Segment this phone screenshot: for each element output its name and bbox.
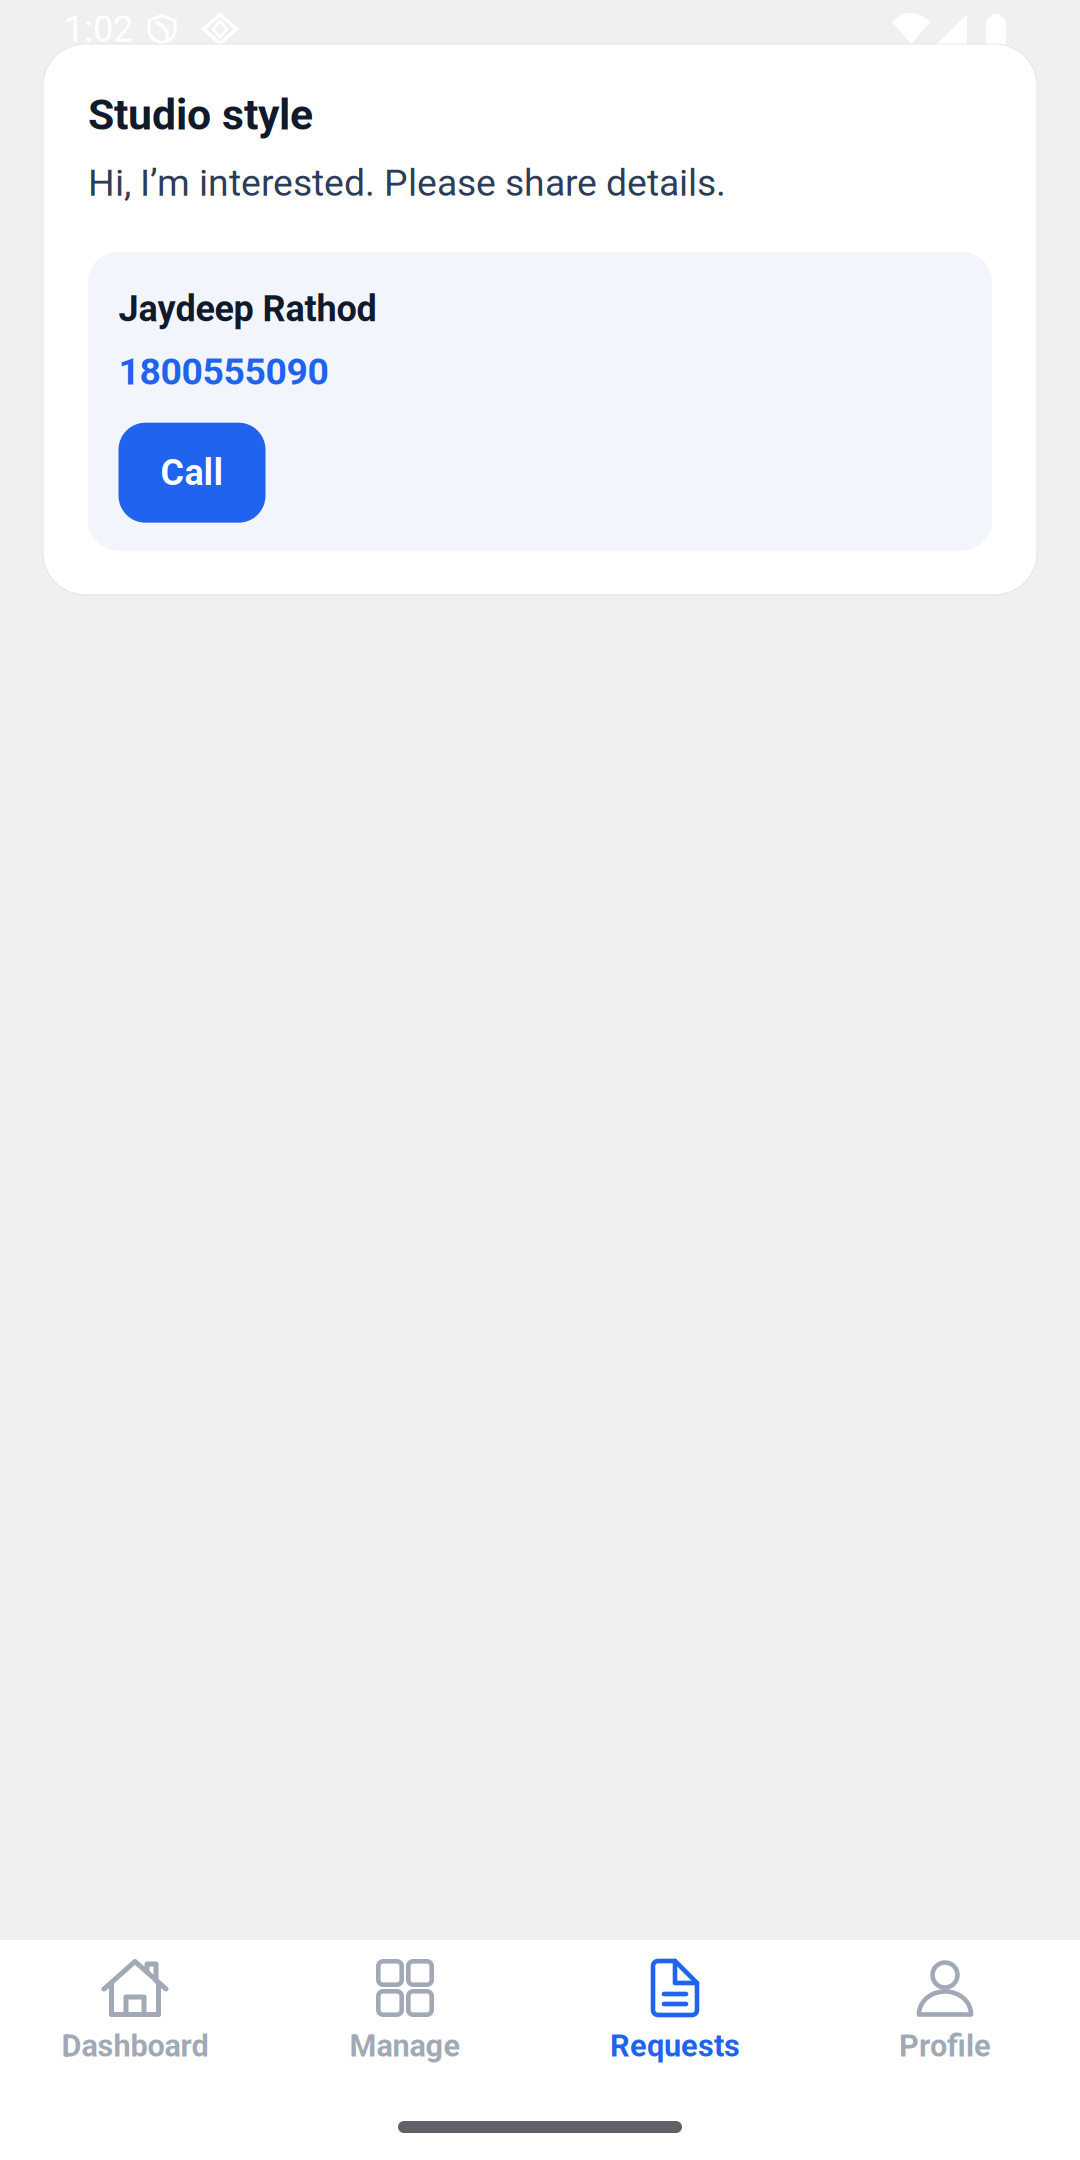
staticText: Studio style bbox=[88, 90, 313, 140]
staticText: Requests bbox=[610, 2028, 740, 2064]
button[interactable]: Call bbox=[118, 423, 265, 523]
button[interactable]: Requests bbox=[540, 1940, 810, 2080]
staticText: Jaydeep Rathod bbox=[118, 288, 376, 330]
staticText: 1:02 bbox=[64, 8, 133, 50]
button[interactable]: Dashboard bbox=[0, 1940, 270, 2080]
button[interactable]: 1800555090 bbox=[118, 350, 328, 394]
staticText: Profile bbox=[899, 2028, 991, 2064]
staticText: Dashboard bbox=[61, 2028, 208, 2064]
staticText: Manage bbox=[349, 2028, 460, 2064]
button[interactable]: Profile bbox=[810, 1940, 1080, 2080]
button[interactable]: Manage bbox=[270, 1940, 540, 2080]
staticText: Hi, I’m interested. Please share details… bbox=[88, 161, 726, 205]
staticText: Call bbox=[160, 452, 223, 494]
staticText: 1800555090 bbox=[118, 350, 328, 394]
